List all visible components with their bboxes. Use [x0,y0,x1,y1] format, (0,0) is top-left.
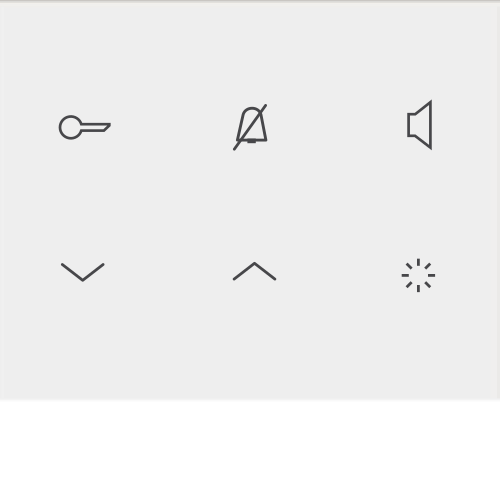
button[interactable]: Lower blinds [0,0,500,500]
button[interactable]: Unlock door [0,0,500,500]
button[interactable]: Mute doorbell [0,0,500,500]
button[interactable]: Volume [0,0,500,500]
button[interactable]: Raise blinds [0,0,500,500]
button[interactable]: Brightness [0,0,500,500]
